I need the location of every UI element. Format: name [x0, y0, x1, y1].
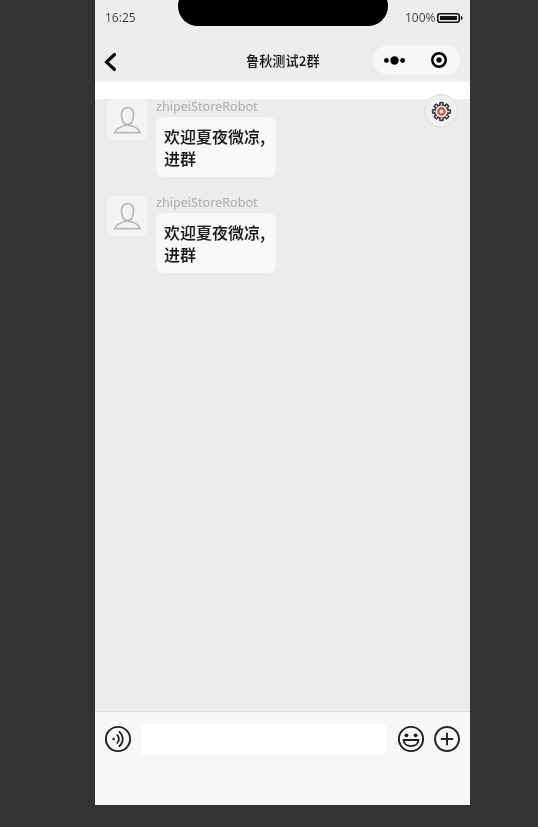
button[interactable]: Avatar: [107, 196, 147, 236]
button[interactable]: Voice message: [100, 721, 136, 757]
staticText: zhipeiStoreRobot: [156, 194, 258, 211]
button[interactable]: Back: [92, 44, 128, 80]
button[interactable]: More: [373, 45, 416, 75]
button[interactable]: 欢迎夏夜微凉, 进群: [156, 213, 276, 273]
button[interactable]: Close: [417, 45, 460, 75]
staticText: 欢迎夏夜微凉, 进群: [164, 124, 266, 170]
staticText: 100%: [405, 9, 436, 25]
button[interactable]: More options: [429, 721, 465, 757]
staticText: 16:25: [105, 9, 136, 25]
staticText: 鲁秋测试2群: [246, 51, 320, 70]
staticText: 欢迎夏夜微凉, 进群: [164, 220, 266, 266]
button[interactable]: Settings: [424, 94, 458, 128]
button[interactable]: Emoji: [393, 721, 429, 757]
button[interactable]: Avatar: [107, 100, 147, 140]
staticText: zhipeiStoreRobot: [156, 98, 258, 115]
button[interactable]: 欢迎夏夜微凉, 进群: [156, 117, 276, 177]
